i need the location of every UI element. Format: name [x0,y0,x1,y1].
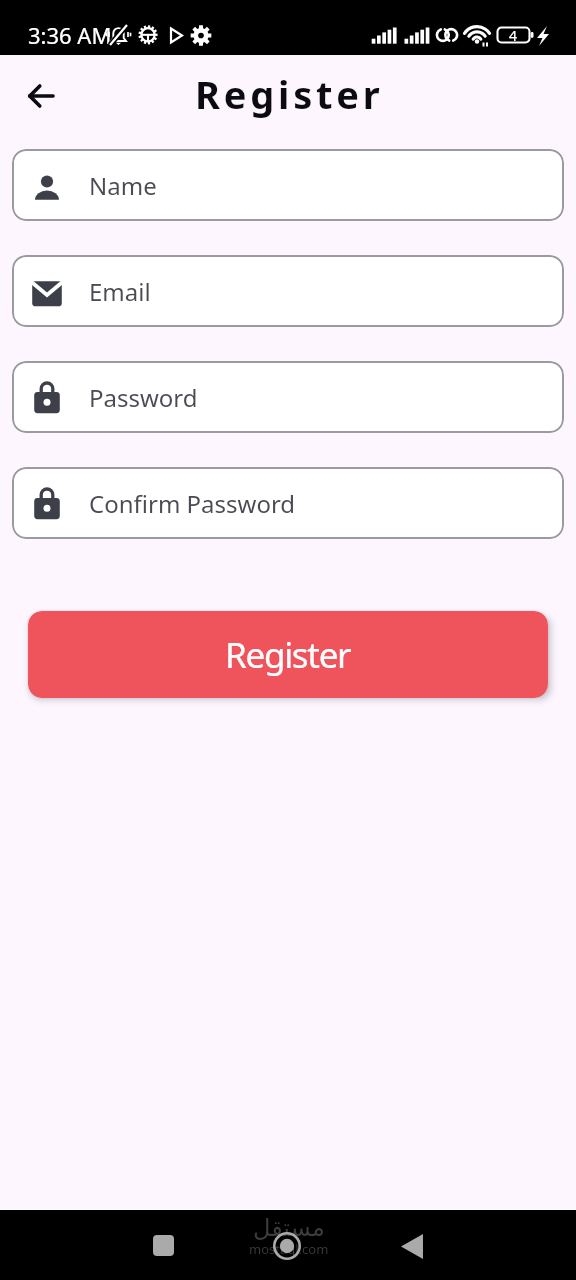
button[interactable]: Back [17,72,65,120]
button[interactable]: Home [263,1222,311,1270]
staticText: مستقل [253,1214,325,1242]
staticText: 4 [509,26,518,45]
button[interactable]: Register [28,611,548,698]
staticText: Name [89,169,157,202]
staticText: 3:36 AM [28,20,112,50]
button[interactable]: Name [12,149,564,221]
staticText: Password [89,381,198,414]
staticText: mostaql.com [249,1240,329,1258]
button[interactable]: Confirm Password [12,467,564,539]
button[interactable]: Back [388,1222,436,1270]
button[interactable]: Recent apps [139,1221,187,1269]
button[interactable]: Password [12,361,564,433]
staticText: Register [195,68,384,120]
staticText: Email [89,275,151,308]
button[interactable]: Email [12,255,564,327]
staticText: Register [225,631,351,679]
staticText: Confirm Password [89,487,296,520]
